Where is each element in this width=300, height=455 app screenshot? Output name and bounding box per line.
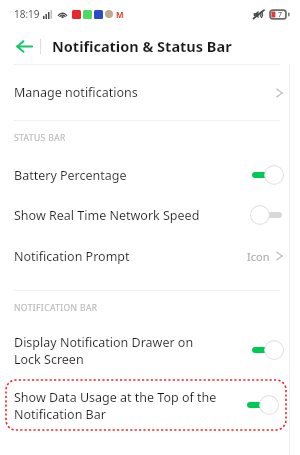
button[interactable]: Manage notifications <box>0 65 300 120</box>
staticText: Manage notifications <box>14 84 276 101</box>
button[interactable]: Notification Prompt <box>0 235 300 277</box>
staticText: Icon <box>247 249 270 264</box>
button[interactable]: Back <box>8 30 40 62</box>
staticText: Show Data Usage at the Top of the Notifi… <box>14 389 237 422</box>
staticText: STATUS BAR <box>14 132 66 144</box>
staticText: M <box>116 9 124 20</box>
button[interactable]: Battery Percentage <box>0 155 300 195</box>
staticText: 18:19 <box>14 7 40 21</box>
staticText: Notification Prompt <box>14 248 247 265</box>
staticText: Battery Percentage <box>14 167 242 184</box>
staticText: 7 <box>278 10 283 20</box>
staticText: NOTIFICATION BAR <box>14 302 98 314</box>
button[interactable]: Show Data Usage at the Top of the Notifi… <box>5 379 287 431</box>
staticText: Display Notification Drawer on Lock Scre… <box>14 334 242 367</box>
staticText: Notification & Status Bar <box>52 36 232 56</box>
staticText: Show Real Time Network Speed <box>14 207 242 224</box>
button[interactable]: Display Notification Drawer on Lock Scre… <box>0 325 300 375</box>
button[interactable]: Show Real Time Network Speed <box>0 195 300 235</box>
